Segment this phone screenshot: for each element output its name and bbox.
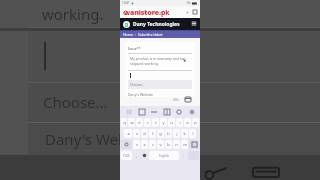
- button[interactable]: Emoji grid: [124, 107, 133, 116]
- staticText: i: [179, 120, 181, 125]
- staticText: n: [175, 142, 178, 147]
- button[interactable]: ?123: [121, 151, 132, 160]
- staticText: My product is in warranty and has stoppe…: [130, 56, 192, 66]
- staticText: e: [138, 120, 141, 125]
- button[interactable]: Settings: [187, 107, 196, 116]
- button[interactable]: Calendar: [185, 97, 191, 102]
- button[interactable]: h: [165, 129, 172, 138]
- staticText: r: [147, 120, 149, 125]
- button[interactable]: Tabs: [193, 10, 197, 14]
- button[interactable]: Comma: [133, 151, 140, 160]
- staticText: .: [183, 153, 185, 158]
- button[interactable]: Sticker: [174, 107, 183, 116]
- button[interactable]: Choose...: [128, 80, 192, 89]
- button[interactable]: k: [181, 129, 188, 138]
- staticText: c: [152, 142, 154, 147]
- button[interactable]: q: [121, 118, 127, 127]
- staticText: t: [155, 120, 157, 125]
- staticText: schoolsdesk.com: [135, 10, 164, 15]
- button[interactable]: Backspace: [189, 140, 199, 149]
- staticText: 10:41: [122, 1, 130, 5]
- button[interactable]: [128, 70, 192, 80]
- button[interactable]: v: [157, 140, 164, 149]
- button[interactable]: 90s: [173, 97, 179, 102]
- button[interactable]: English: [149, 151, 179, 160]
- staticText: Issue**: [128, 46, 141, 51]
- staticText: wanistore.pk: [124, 8, 170, 18]
- staticText: y: [162, 120, 165, 125]
- button[interactable]: b: [165, 140, 172, 149]
- button[interactable]: Submit a ticket: [138, 32, 163, 37]
- staticText: Dany's Web: [45, 129, 128, 149]
- staticText: q: [123, 120, 126, 125]
- staticText: l: [192, 131, 194, 136]
- staticText: o: [186, 120, 189, 125]
- button[interactable]: c: [149, 140, 156, 149]
- staticText: Vo: [187, 1, 191, 5]
- staticText: k: [183, 131, 186, 136]
- staticText: v: [159, 142, 162, 147]
- staticText: Dany's Website: [128, 92, 154, 97]
- button[interactable]: Translate: [162, 107, 171, 116]
- button[interactable]: Shift: [121, 140, 132, 149]
- button[interactable]: e: [136, 118, 143, 127]
- button[interactable]: Home: [123, 10, 128, 15]
- button[interactable]: w: [128, 118, 135, 127]
- button[interactable]: u: [168, 118, 175, 127]
- staticText: z: [136, 142, 138, 147]
- button[interactable]: n: [173, 140, 180, 149]
- button[interactable]: s: [133, 129, 140, 138]
- staticText: h: [167, 131, 170, 136]
- staticText: Dany Technologies: [133, 21, 180, 28]
- staticText: a: [127, 131, 130, 136]
- staticText: d: [143, 131, 146, 136]
- staticText: Choose...: [43, 92, 108, 112]
- button[interactable]: g: [157, 129, 164, 138]
- staticText: u: [170, 120, 173, 125]
- staticText: English: [159, 154, 170, 158]
- staticText: D: [125, 22, 129, 28]
- button[interactable]: r: [144, 118, 151, 127]
- button[interactable]: New tab: [185, 10, 190, 15]
- button[interactable]: schoolsdesk.com: [131, 10, 183, 15]
- button[interactable]: p: [192, 118, 199, 127]
- staticText: b: [167, 142, 170, 147]
- staticText: ,: [136, 153, 138, 158]
- staticText: w: [130, 120, 134, 125]
- button[interactable]: Voice input: [141, 151, 148, 160]
- staticText: g: [159, 131, 162, 136]
- button[interactable]: m: [181, 140, 188, 149]
- staticText: j: [176, 131, 178, 136]
- staticText: s: [136, 131, 138, 136]
- button[interactable]: l: [189, 129, 196, 138]
- button[interactable]: x: [141, 140, 148, 149]
- staticText: p: [194, 120, 197, 125]
- staticText: Choose...: [130, 82, 146, 87]
- button[interactable]: Clipboard: [137, 107, 146, 116]
- staticText: >: [133, 33, 138, 37]
- button[interactable]: f: [149, 129, 156, 138]
- staticText: working.: [42, 4, 104, 24]
- button[interactable]: o: [184, 118, 191, 127]
- button[interactable]: a: [124, 129, 132, 138]
- button[interactable]: i: [176, 118, 183, 127]
- staticText: x: [143, 142, 146, 147]
- button[interactable]: j: [173, 129, 180, 138]
- button[interactable]: z: [133, 140, 140, 149]
- staticText: f: [152, 131, 154, 136]
- button[interactable]: y: [160, 118, 167, 127]
- button[interactable]: Home: [123, 32, 133, 37]
- button[interactable]: GIF: [149, 107, 158, 116]
- staticText: m: [183, 142, 187, 147]
- button[interactable]: Menu: [191, 21, 197, 27]
- staticText: +: [186, 10, 189, 15]
- button[interactable]: t: [152, 118, 159, 127]
- staticText: ?123: [123, 154, 130, 158]
- button[interactable]: My product is in warranty and has stoppe…: [128, 53, 192, 68]
- button[interactable]: d: [141, 129, 148, 138]
